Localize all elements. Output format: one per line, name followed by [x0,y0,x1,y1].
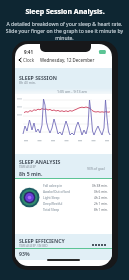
staticText: Awake/Out of bed [43,190,71,194]
staticText: 0h 38 min. [92,184,108,188]
staticText: Fall asleep in [43,184,63,188]
staticText: SLEEP EFFICIENCY [19,237,65,244]
staticText: 8h 1 min. [94,208,108,212]
staticText: 8h 43 min. [19,80,36,85]
staticText: Light Sleep [43,196,60,200]
staticText: 4h 2 min. [94,196,108,200]
staticText: 93% [19,250,30,257]
staticText: Clock [23,57,35,63]
staticText: Deep/Restful [43,202,63,206]
staticText: 93% of goal [87,167,105,171]
staticText: Sleep Session Analysis. [25,7,105,17]
button[interactable]: Clock [17,56,36,64]
staticText: 2h 1 min. [94,202,108,206]
staticText: SLEEP ANALYSIS [19,158,61,165]
staticText: 0h 6 min. [94,190,108,194]
staticText: TIME ASLEEP [19,165,36,169]
staticText: 8h 5 min. [19,170,43,177]
staticText: Wednesday, 12 December [40,57,95,63]
staticText: Total Sleep [43,208,60,212]
other: Battery [99,50,107,54]
staticText: SLEEP SESSION [19,74,57,81]
staticText: 9:41 [24,49,33,55]
staticText: TIME ASLEEP / IN BED [19,244,48,248]
staticText: 1:05 am - 9:13 am [57,89,87,94]
staticText: A detailed breakdown of your sleep & hea… [4,21,125,42]
